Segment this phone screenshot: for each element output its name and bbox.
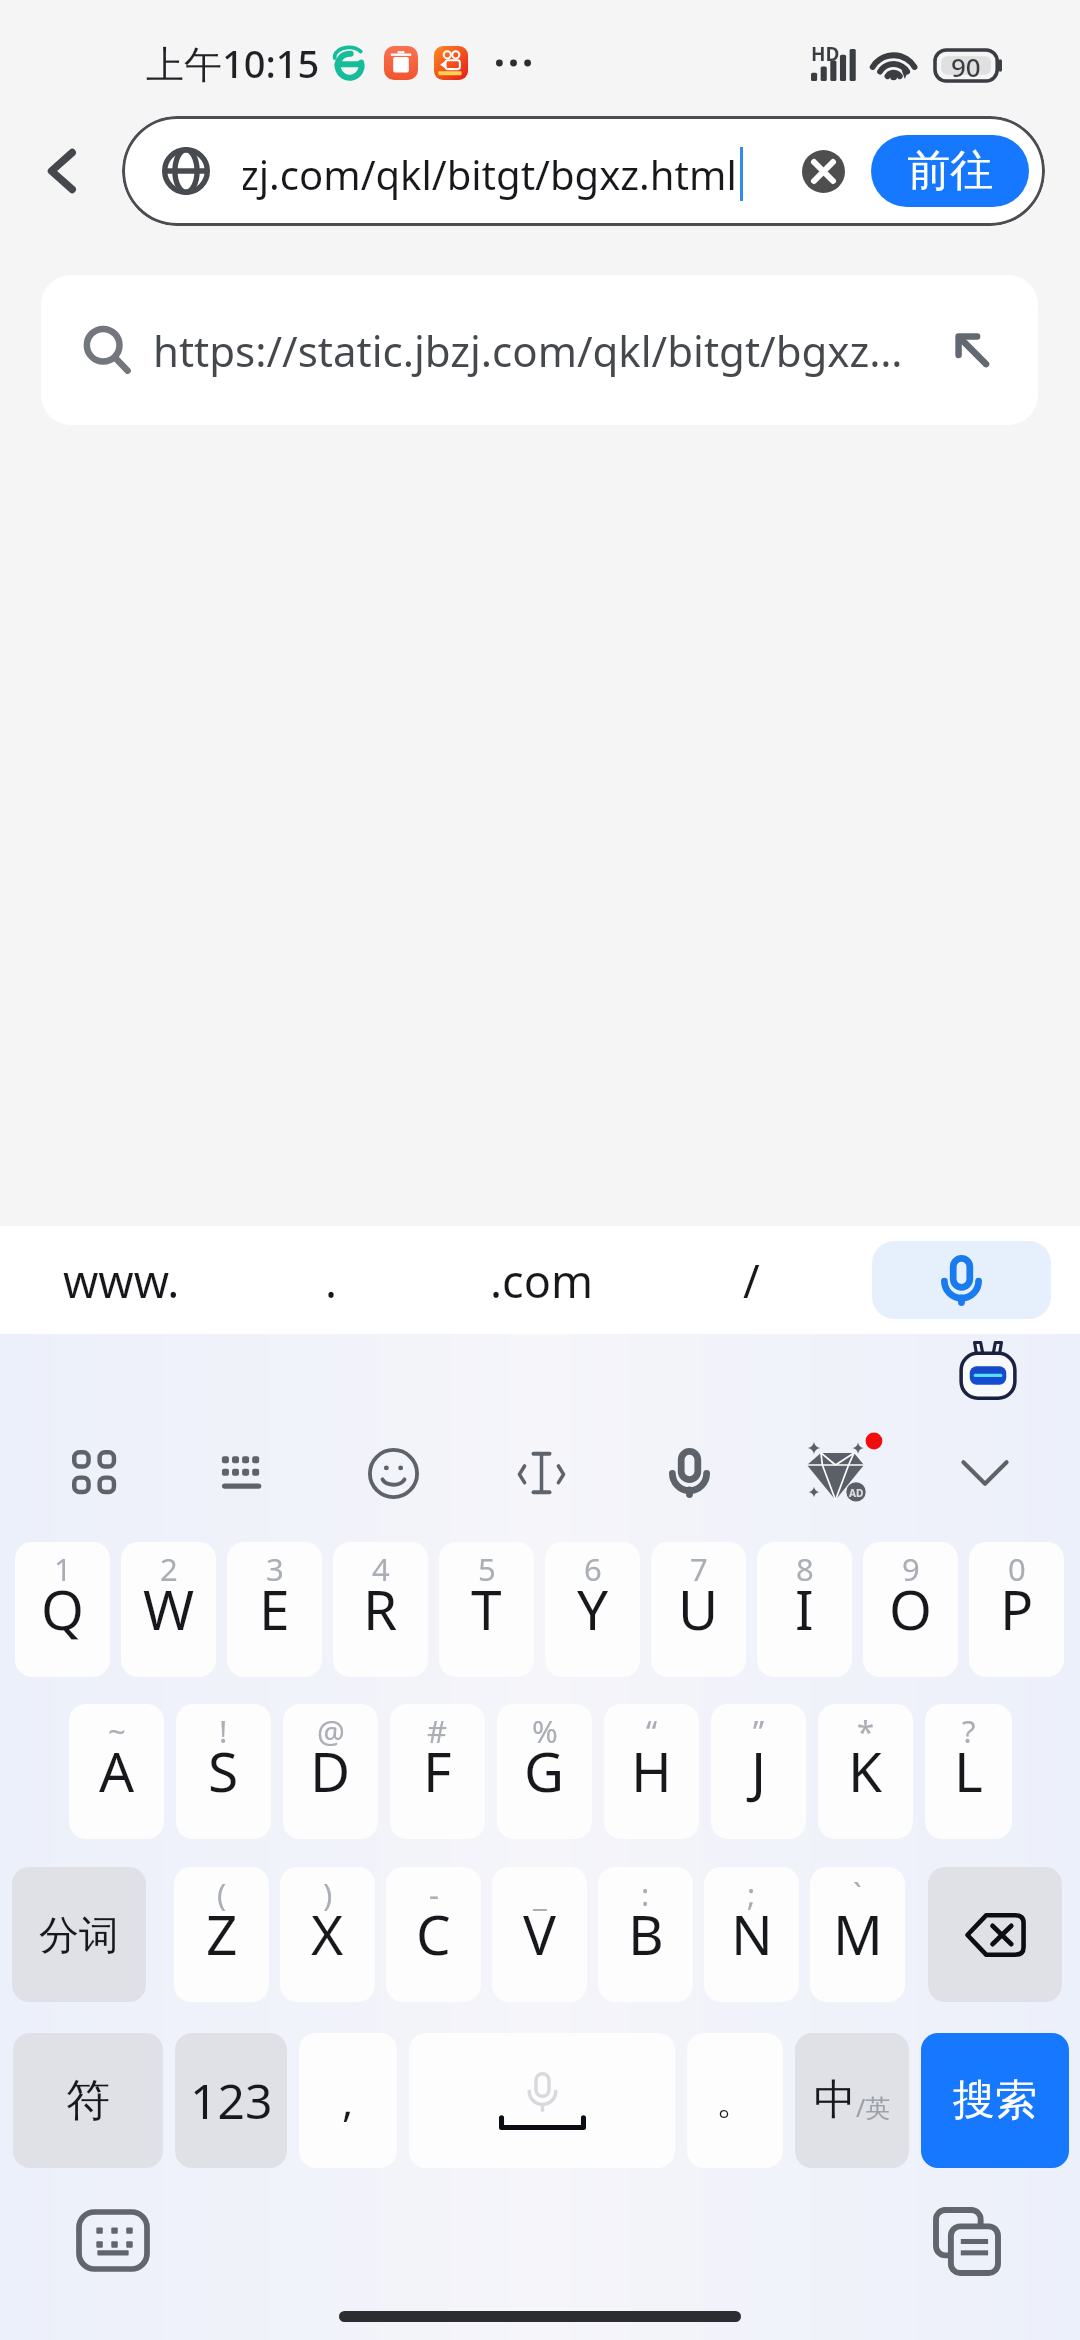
staticText: ; bbox=[747, 1873, 756, 1915]
button[interactable]: Back bbox=[22, 130, 104, 212]
button[interactable]: .com bbox=[436, 1226, 646, 1334]
staticText: G bbox=[524, 1733, 565, 1808]
staticText: E bbox=[259, 1571, 290, 1646]
button[interactable]: 。 bbox=[687, 2033, 783, 2168]
button[interactable]: “ bbox=[604, 1704, 699, 1839]
staticText: : bbox=[641, 1873, 650, 1915]
button[interactable]: % bbox=[497, 1704, 592, 1839]
button[interactable]: ? bbox=[925, 1704, 1012, 1839]
staticText: 0 bbox=[1008, 1548, 1026, 1590]
staticText: % bbox=[532, 1710, 558, 1752]
button[interactable]: 123 bbox=[175, 2033, 287, 2168]
staticText: . bbox=[325, 1250, 338, 1311]
button[interactable]: Switch input method bbox=[79, 2212, 147, 2269]
staticText: P bbox=[1000, 1571, 1034, 1646]
button[interactable]: 8 bbox=[757, 1542, 852, 1677]
staticText: 符 bbox=[66, 2073, 110, 2128]
button[interactable]: Clipboard bbox=[936, 2210, 998, 2273]
button[interactable]: Assistant bbox=[956, 1338, 1020, 1402]
button[interactable]: ` bbox=[810, 1867, 905, 2002]
staticText: L bbox=[954, 1733, 983, 1808]
button[interactable]: 2 bbox=[121, 1542, 216, 1677]
button[interactable]: # bbox=[390, 1704, 485, 1839]
staticText: M bbox=[833, 1896, 883, 1971]
staticText: V bbox=[523, 1896, 557, 1971]
button[interactable]: Clear text bbox=[802, 150, 845, 193]
staticText: U bbox=[678, 1571, 719, 1646]
button[interactable]: Keyboard layout bbox=[170, 1423, 319, 1523]
staticText: 5 bbox=[478, 1548, 496, 1590]
staticText: www. bbox=[63, 1250, 180, 1311]
button[interactable]: 中 bbox=[795, 2033, 909, 2168]
staticText: 9 bbox=[902, 1548, 920, 1590]
button[interactable]: 1 bbox=[15, 1542, 110, 1677]
staticText: * bbox=[857, 1710, 875, 1752]
staticText: 8 bbox=[796, 1548, 814, 1590]
staticText: Y bbox=[577, 1571, 609, 1646]
staticText: B bbox=[628, 1896, 664, 1971]
staticText: ~ bbox=[108, 1710, 126, 1752]
staticText: O bbox=[889, 1571, 932, 1646]
staticText: 90 bbox=[951, 49, 981, 80]
button[interactable] bbox=[928, 1867, 1062, 2002]
staticText: ” bbox=[753, 1710, 765, 1752]
button[interactable]: ” bbox=[711, 1704, 806, 1839]
staticText: J bbox=[751, 1733, 767, 1808]
staticText: 上午10:15 bbox=[146, 37, 320, 89]
staticText: 2 bbox=[160, 1548, 178, 1590]
staticText: _ bbox=[533, 1873, 547, 1915]
button[interactable]: : bbox=[598, 1867, 693, 2002]
staticText: T bbox=[471, 1571, 502, 1646]
button[interactable]: 4 bbox=[333, 1542, 428, 1677]
button[interactable]: Edit cursor bbox=[467, 1423, 615, 1523]
button[interactable]: ( bbox=[174, 1867, 269, 2002]
button[interactable]: 6 bbox=[545, 1542, 640, 1677]
staticText: ? bbox=[962, 1710, 976, 1752]
staticText: zj.com/qkl/bitgt/bgxz.html bbox=[243, 147, 737, 201]
button[interactable]: 前往 bbox=[871, 135, 1029, 207]
staticText: , bbox=[342, 2072, 354, 2129]
button[interactable]: https://static.jbzj.com/qkl/bitgt/bgxz… bbox=[41, 275, 1038, 425]
staticText: ` bbox=[853, 1873, 862, 1915]
staticText: A bbox=[99, 1733, 135, 1808]
button[interactable]: ) bbox=[280, 1867, 375, 2002]
button[interactable]: . bbox=[226, 1226, 436, 1334]
staticText: 4 bbox=[372, 1548, 390, 1590]
button[interactable]: Voice input bbox=[872, 1241, 1051, 1319]
button[interactable]: zj.com/qkl/bitgt/bgxz.html bbox=[122, 116, 1045, 226]
staticText: HD bbox=[811, 41, 840, 67]
button[interactable]: Keyboard modes bbox=[21, 1423, 170, 1523]
button[interactable]: _ bbox=[492, 1867, 587, 2002]
button[interactable]: 符 bbox=[13, 2033, 163, 2168]
button[interactable]: @ bbox=[283, 1704, 378, 1839]
button[interactable]: 分词 bbox=[12, 1867, 146, 2002]
staticText: https://static.jbzj.com/qkl/bitgt/bgxz… bbox=[153, 322, 932, 379]
button[interactable]: Themes bbox=[763, 1423, 911, 1523]
staticText: # bbox=[427, 1710, 448, 1752]
button[interactable]: 3 bbox=[227, 1542, 322, 1677]
staticText: 中 bbox=[814, 2074, 856, 2127]
button[interactable]: * bbox=[818, 1704, 913, 1839]
button[interactable]: 搜索 bbox=[921, 2033, 1069, 2168]
button[interactable]: ; bbox=[704, 1867, 799, 2002]
staticText: X bbox=[311, 1896, 344, 1971]
button[interactable]: ! bbox=[176, 1704, 271, 1839]
staticText: / bbox=[743, 1250, 760, 1311]
button[interactable]: www. bbox=[16, 1226, 226, 1334]
button[interactable]: 7 bbox=[651, 1542, 746, 1677]
button[interactable] bbox=[409, 2033, 675, 2168]
button[interactable]: ~ bbox=[69, 1704, 164, 1839]
button[interactable]: Hide keyboard bbox=[911, 1423, 1059, 1523]
button[interactable]: Voice input bbox=[615, 1423, 763, 1523]
button[interactable]: / bbox=[646, 1226, 856, 1334]
button[interactable]: 0 bbox=[969, 1542, 1064, 1677]
button[interactable]: Use suggestion bbox=[932, 310, 1012, 390]
staticText: 123 bbox=[190, 2068, 273, 2133]
button[interactable]: , bbox=[299, 2033, 397, 2168]
button[interactable]: - bbox=[386, 1867, 481, 2002]
button[interactable]: 5 bbox=[439, 1542, 534, 1677]
button[interactable]: Emoji bbox=[319, 1423, 467, 1523]
staticText: .com bbox=[490, 1250, 593, 1311]
staticText: H bbox=[631, 1733, 672, 1808]
button[interactable]: 9 bbox=[863, 1542, 958, 1677]
